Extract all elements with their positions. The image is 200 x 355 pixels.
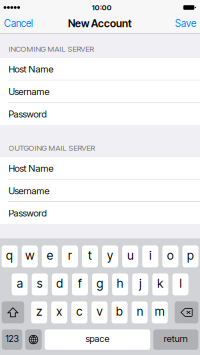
staticText: Save — [175, 17, 196, 29]
staticText: t — [88, 248, 92, 263]
button[interactable]: c — [71, 301, 87, 323]
staticText: 123 — [5, 333, 18, 344]
button[interactable]: u — [122, 245, 138, 267]
button[interactable]: b — [112, 301, 128, 323]
button[interactable]: Password — [0, 202, 200, 224]
staticText: Username — [8, 86, 49, 97]
button[interactable]: Cancel — [0, 15, 37, 31]
staticText: y — [107, 248, 113, 263]
button[interactable]: p — [182, 245, 198, 267]
button[interactable]: return — [153, 329, 198, 350]
button[interactable]: n — [132, 301, 148, 323]
button[interactable]: Username — [0, 180, 200, 202]
button[interactable]: a — [12, 273, 28, 295]
button[interactable]: Next keyboard — [25, 329, 42, 350]
staticText: Password — [8, 208, 46, 219]
staticText: l — [179, 276, 181, 291]
staticText: Username — [8, 185, 49, 196]
staticText: r — [68, 248, 72, 263]
button[interactable]: o — [162, 245, 178, 267]
staticText: a — [17, 276, 23, 291]
button[interactable]: s — [32, 273, 48, 295]
button[interactable]: Host Name — [0, 58, 200, 80]
button[interactable]: f — [72, 273, 88, 295]
button[interactable]: e — [42, 245, 58, 267]
staticText: New Account — [68, 17, 132, 30]
button[interactable]: z — [31, 301, 47, 323]
button[interactable]: i — [142, 245, 158, 267]
staticText: m — [155, 304, 165, 319]
staticText: c — [76, 304, 82, 319]
staticText: z — [36, 304, 42, 319]
staticText: v — [96, 304, 102, 319]
button[interactable]: h — [112, 273, 128, 295]
staticText: n — [137, 304, 143, 319]
staticText: Password — [8, 108, 46, 120]
button[interactable]: k — [152, 273, 168, 295]
staticText: f — [78, 276, 82, 291]
staticText: INCOMING MAIL SERVER — [8, 44, 94, 53]
staticText: g — [96, 276, 103, 291]
staticText: d — [56, 276, 63, 291]
button[interactable]: r — [62, 245, 78, 267]
button[interactable]: Shift — [2, 301, 24, 323]
staticText: return — [164, 333, 188, 344]
staticText: p — [187, 248, 194, 263]
staticText: OUTGOING MAIL SERVER — [8, 143, 95, 153]
staticText: w — [25, 248, 34, 263]
staticText: space — [85, 333, 109, 344]
button[interactable]: j — [132, 273, 148, 295]
button[interactable]: y — [102, 245, 118, 267]
button[interactable]: Save — [171, 15, 200, 31]
staticText: q — [6, 248, 13, 263]
button[interactable]: t — [82, 245, 98, 267]
staticText: j — [139, 276, 141, 291]
staticText: 10:00 — [92, 3, 112, 12]
staticText: x — [56, 304, 62, 319]
staticText: u — [127, 248, 133, 263]
staticText: s — [37, 276, 43, 291]
staticText: i — [149, 248, 151, 263]
button[interactable]: Host Name — [0, 157, 200, 180]
staticText: Cancel — [4, 17, 33, 29]
button[interactable]: w — [22, 245, 38, 267]
staticText: o — [167, 248, 174, 263]
button[interactable]: d — [52, 273, 68, 295]
button[interactable]: Delete — [175, 301, 198, 323]
button[interactable]: Username — [0, 80, 200, 103]
staticText: b — [116, 304, 123, 319]
staticText: e — [47, 248, 53, 263]
button[interactable]: g — [92, 273, 108, 295]
button[interactable]: v — [91, 301, 107, 323]
button[interactable]: m — [152, 301, 168, 323]
button[interactable]: space — [45, 329, 150, 350]
button[interactable]: Password — [0, 103, 200, 125]
button[interactable]: x — [51, 301, 67, 323]
staticText: Host Name — [8, 163, 53, 174]
staticText: k — [157, 276, 163, 291]
staticText: h — [117, 276, 124, 291]
button[interactable]: q — [2, 245, 18, 267]
button[interactable]: l — [172, 273, 188, 295]
staticText: Host Name — [8, 64, 53, 75]
button[interactable]: 123 — [2, 329, 22, 350]
